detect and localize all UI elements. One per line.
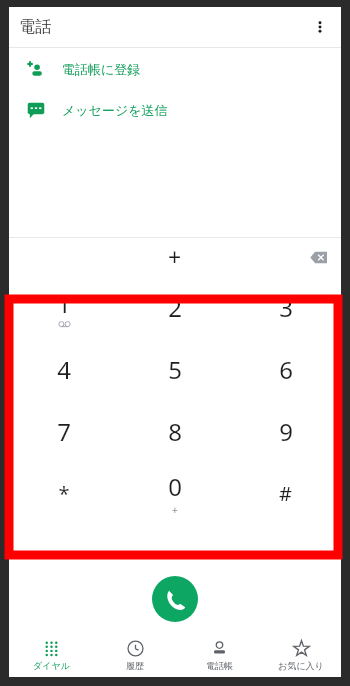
button[interactable]: 9 — [230, 400, 341, 462]
button[interactable]: * — [9, 462, 119, 524]
button[interactable]: 0 — [119, 462, 230, 524]
staticText: 5 — [168, 353, 182, 386]
button[interactable]: 2 — [119, 276, 230, 338]
staticText: 電話帳 — [206, 660, 233, 671]
button[interactable]: メッセージを送信 — [9, 89, 341, 130]
button[interactable]: お気に入り — [261, 633, 341, 677]
button[interactable]: 履歴 — [93, 633, 177, 677]
button[interactable]: 1 — [9, 276, 119, 338]
button[interactable]: 5 — [119, 338, 230, 400]
staticText: 9 — [279, 415, 293, 448]
button[interactable]: More options — [302, 9, 338, 45]
staticText: メッセージを送信 — [62, 102, 168, 118]
button[interactable]: Backspace — [301, 240, 335, 274]
staticText: 6 — [279, 353, 293, 386]
staticText: 4 — [57, 353, 71, 386]
staticText: 電話 — [19, 17, 51, 37]
staticText: + — [168, 241, 182, 272]
button[interactable]: 電話帳に登録 — [9, 48, 341, 89]
button[interactable]: 8 — [119, 400, 230, 462]
button[interactable]: 電話帳 — [177, 633, 261, 677]
staticText: 3 — [279, 291, 293, 324]
button[interactable]: 3 — [230, 276, 341, 338]
button[interactable]: 6 — [230, 338, 341, 400]
staticText: 1 — [57, 287, 71, 320]
button[interactable]: 4 — [9, 338, 119, 400]
button[interactable]: # — [230, 462, 341, 524]
button[interactable]: ダイヤル — [9, 633, 93, 677]
staticText: 2 — [168, 291, 182, 324]
staticText: 電話帳に登録 — [62, 61, 141, 77]
staticText: 7 — [57, 415, 71, 448]
staticText: * — [58, 480, 70, 507]
staticText: 8 — [168, 415, 182, 448]
staticText: + — [172, 503, 178, 517]
staticText: ダイヤル — [33, 660, 70, 671]
staticText: # — [279, 480, 292, 507]
button[interactable]: Call — [152, 576, 198, 622]
staticText: 履歴 — [126, 660, 144, 671]
staticText: 0 — [168, 470, 182, 503]
button[interactable]: 7 — [9, 400, 119, 462]
staticText: お気に入り — [278, 660, 324, 671]
